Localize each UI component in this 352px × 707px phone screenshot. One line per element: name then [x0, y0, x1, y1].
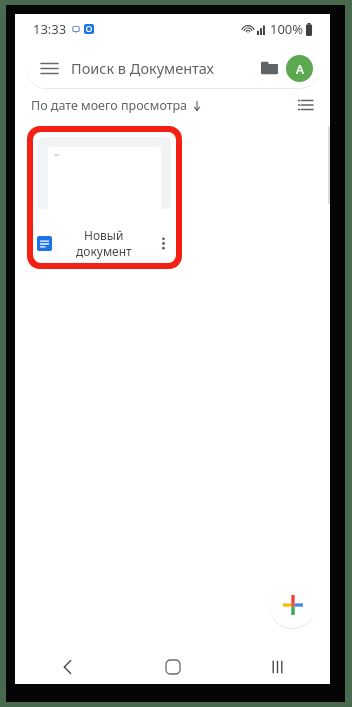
staticText: A — [296, 61, 304, 77]
button[interactable]: Open navigation menu — [26, 48, 319, 88]
staticText: 100% — [270, 20, 304, 38]
button[interactable]: По дате моего просмотра — [29, 94, 204, 117]
button[interactable]: Create new document — [269, 581, 316, 628]
button[interactable]: More options — [153, 233, 173, 253]
staticText: Новый — [84, 227, 124, 243]
button[interactable]: Recent apps — [225, 650, 330, 684]
button[interactable]: Home — [120, 650, 225, 684]
button[interactable]: Open navigation menu — [32, 51, 66, 85]
button[interactable]: Новый — [33, 132, 176, 263]
staticText: 13:33 — [33, 20, 67, 38]
staticText: По дате моего просмотра — [31, 97, 188, 114]
button[interactable]: Switch to list view — [291, 91, 319, 119]
staticText: документ — [76, 243, 132, 259]
button[interactable]: Back — [15, 650, 120, 684]
button[interactable]: My Drive folder — [253, 52, 285, 84]
button[interactable]: Account — [286, 55, 313, 82]
staticText: Поиск в Документах — [71, 58, 215, 78]
